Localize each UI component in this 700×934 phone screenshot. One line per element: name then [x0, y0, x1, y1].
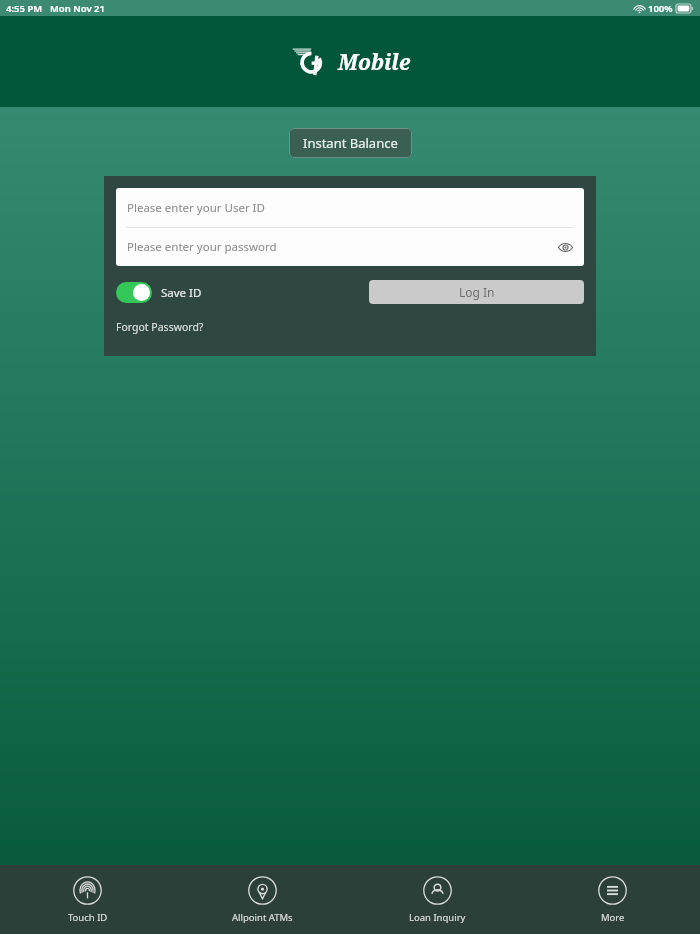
staticText: Instant Balance [303, 134, 398, 152]
staticText: Please enter your User ID [127, 200, 265, 216]
button[interactable]: Log In [369, 280, 584, 304]
staticText: 4:55 PM [6, 2, 43, 15]
staticText: Save ID [161, 285, 202, 301]
staticText: Loan Inquiry [409, 911, 466, 924]
staticText: Forgot Password? [116, 320, 204, 334]
staticText: Mon Nov 21 [50, 2, 105, 15]
staticText: Mobile [338, 48, 411, 77]
button[interactable]: More [525, 865, 700, 934]
button[interactable]: Allpoint ATMs [175, 865, 350, 934]
staticText: Allpoint ATMs [232, 911, 293, 924]
button[interactable]: Forgot Password? [116, 320, 204, 334]
staticText: Log In [459, 284, 495, 300]
button[interactable]: Touch ID [0, 865, 175, 934]
button[interactable]: Loan Inquiry [350, 865, 525, 934]
button[interactable]: Save ID [116, 282, 202, 303]
button[interactable]: Instant Balance [289, 128, 412, 158]
staticText: 100% [648, 2, 673, 15]
button[interactable]: Show password [554, 236, 576, 258]
button[interactable]: Please enter your password [116, 228, 584, 266]
staticText: Touch ID [68, 911, 108, 924]
staticText: More [601, 911, 625, 924]
staticText: Please enter your password [127, 239, 277, 255]
button[interactable]: Please enter your User ID [116, 188, 584, 227]
